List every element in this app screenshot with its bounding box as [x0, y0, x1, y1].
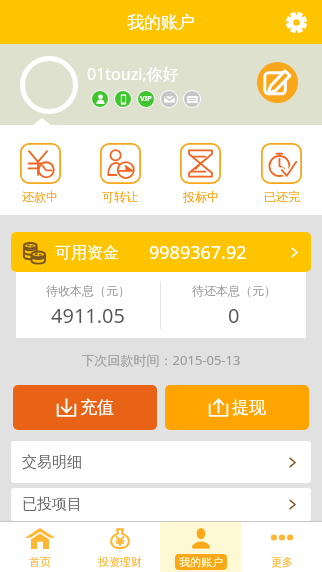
button[interactable]: 交易明细 [11, 441, 311, 483]
staticText: 投资理财 [98, 555, 142, 569]
button[interactable]: 投资理财 [80, 522, 160, 572]
button[interactable]: 可转让 [80, 125, 160, 215]
button[interactable]: 提现 [165, 385, 309, 430]
staticText: 已投项目 [22, 495, 82, 514]
staticText: 我的账户 [179, 555, 223, 569]
staticText: 交易明细 [22, 453, 82, 472]
staticText: 待还本息（元） [192, 283, 276, 298]
button[interactable]: 已还完 [241, 125, 322, 215]
staticText: 可用资金 [55, 243, 119, 263]
staticText: 9989367.92 [149, 240, 247, 265]
staticText: 待收本息（元） [46, 283, 130, 298]
button[interactable]: 还款中 [0, 125, 80, 215]
staticText: 首页 [29, 555, 51, 569]
button[interactable]: 可用资金 [11, 232, 311, 272]
staticText: 充值 [80, 397, 114, 418]
button[interactable]: 已投项目 [11, 488, 311, 521]
staticText: 投标中 [183, 189, 219, 204]
button[interactable]: 投标中 [160, 125, 241, 215]
staticText: 可转让 [102, 189, 138, 204]
staticText: 4911.05 [51, 302, 125, 329]
staticText: 还款中 [22, 189, 58, 204]
staticText: VIP [140, 94, 152, 104]
staticText: 下次回款时间：2015-05-13 [0, 351, 322, 369]
staticText: 我的账户 [127, 12, 195, 33]
button[interactable]: Settings [279, 5, 313, 39]
staticText: 0 [228, 302, 240, 329]
button[interactable]: 更多 [241, 522, 322, 572]
button[interactable]: 我的账户 [160, 522, 241, 572]
button[interactable]: Edit profile [257, 62, 298, 103]
button[interactable]: 首页 [0, 522, 80, 572]
staticText: 01touzi,你好 [87, 63, 179, 85]
button[interactable]: 充值 [13, 385, 157, 430]
staticText: 更多 [271, 555, 293, 569]
staticText: 提现 [232, 397, 266, 418]
staticText: 已还完 [264, 189, 300, 204]
